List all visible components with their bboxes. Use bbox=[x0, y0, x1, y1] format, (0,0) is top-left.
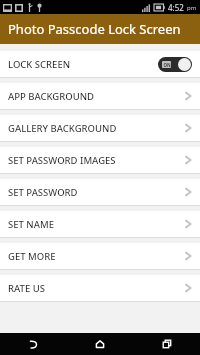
button[interactable]: RATE US bbox=[0, 275, 200, 301]
button[interactable]: LOCK SCREEN bbox=[0, 51, 200, 77]
other: Open bbox=[185, 186, 192, 198]
staticText: 4:52 bbox=[168, 2, 184, 13]
staticText: ON bbox=[163, 62, 171, 68]
other: Open bbox=[185, 218, 192, 230]
staticText: Photo Passcode Lock Screen bbox=[8, 20, 181, 38]
staticText: RATE US bbox=[8, 282, 185, 295]
other: Open bbox=[185, 250, 192, 262]
button[interactable]: SET PASSWORD bbox=[0, 179, 200, 205]
button[interactable]: GET MORE bbox=[0, 243, 200, 269]
button[interactable]: SET PASSWORD IMAGES bbox=[0, 147, 200, 173]
staticText: SET PASSWORD bbox=[8, 186, 185, 199]
other: Open bbox=[185, 282, 192, 294]
staticText: APP BACKGROUND bbox=[8, 90, 185, 103]
staticText: GALLERY BACKGROUND bbox=[8, 122, 185, 135]
staticText: pm bbox=[187, 4, 197, 12]
button[interactable]: Home bbox=[66, 333, 133, 355]
button[interactable]: GALLERY BACKGROUND bbox=[0, 115, 200, 141]
staticText: SET NAME bbox=[8, 218, 185, 231]
other: Open bbox=[185, 90, 192, 102]
staticText: GET MORE bbox=[8, 250, 185, 263]
staticText: LOCK SCREEN bbox=[8, 58, 158, 71]
other: Open bbox=[185, 154, 192, 166]
button[interactable]: Lock screen toggle, on bbox=[158, 57, 192, 72]
button[interactable]: SET NAME bbox=[0, 211, 200, 237]
button[interactable]: Recent apps bbox=[133, 333, 200, 355]
button[interactable]: Back bbox=[0, 333, 66, 355]
button[interactable]: APP BACKGROUND bbox=[0, 83, 200, 109]
other: Open bbox=[185, 122, 192, 134]
staticText: SET PASSWORD IMAGES bbox=[8, 154, 185, 167]
